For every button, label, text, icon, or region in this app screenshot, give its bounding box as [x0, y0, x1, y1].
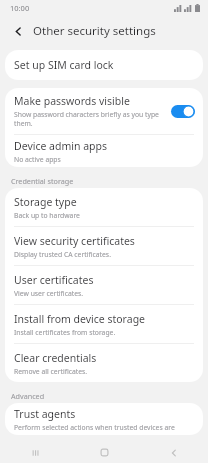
staticText: 10:00 [10, 3, 30, 13]
button[interactable]: Device admin apps [5, 135, 203, 167]
staticText: Back up to hardware [14, 211, 80, 220]
staticText: Device admin apps [14, 139, 108, 153]
staticText: Other security settings [33, 23, 156, 39]
button[interactable]: Trust agents [5, 403, 203, 435]
button[interactable]: Back [8, 21, 28, 41]
staticText: Perform selected actions when trusted de… [14, 423, 175, 432]
staticText: User certificates [14, 273, 94, 287]
button[interactable]: Back [139, 442, 208, 463]
staticText: Display trusted CA certificates. [14, 250, 111, 259]
staticText: Clear credentials [14, 351, 97, 365]
staticText: Show password characters briefly as you … [14, 110, 165, 128]
staticText: Advanced [11, 391, 45, 401]
button[interactable]: Recent apps [0, 442, 70, 463]
button[interactable]: Home [70, 442, 139, 463]
staticText: Set up SIM card lock [14, 58, 114, 72]
staticText: Make passwords visible [14, 94, 130, 108]
button[interactable]: Set up SIM card lock [5, 50, 203, 80]
staticText: Install from device storage [14, 312, 146, 326]
button[interactable]: Make passwords visible [171, 105, 195, 118]
staticText: View security certificates [14, 234, 135, 248]
staticText: Install certificates from storage. [14, 328, 116, 337]
button[interactable]: View security certificates [5, 227, 203, 265]
button[interactable]: Clear credentials [5, 344, 203, 382]
staticText: Trust agents [14, 407, 76, 421]
staticText: No active apps [14, 155, 61, 164]
staticText: Remove all certificates. [14, 367, 88, 376]
button[interactable]: Storage type [5, 188, 203, 226]
staticText: Credential storage [11, 176, 74, 186]
staticText: View user certificates. [14, 289, 84, 298]
button[interactable]: User certificates [5, 266, 203, 304]
button[interactable]: Make passwords visible [5, 88, 203, 134]
button[interactable]: Install from device storage [5, 305, 203, 343]
staticText: Storage type [14, 195, 77, 209]
